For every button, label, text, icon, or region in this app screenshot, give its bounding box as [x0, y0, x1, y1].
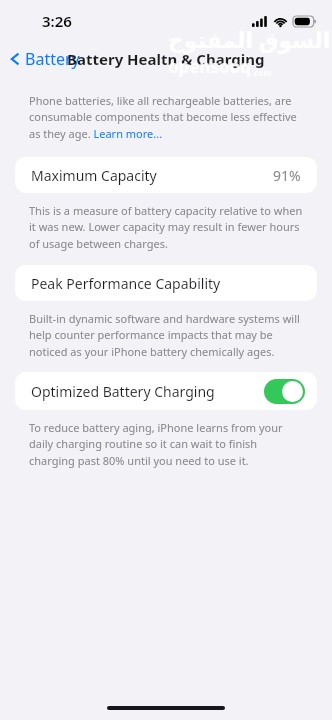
staticText: 3:26: [42, 11, 72, 31]
staticText: السوق المفتوح: [168, 24, 331, 54]
button[interactable]: Peak Performance Capability: [15, 265, 317, 301]
staticText: Phone batteries, like all rechargeable b…: [29, 93, 303, 142]
button[interactable]: Optimized Battery Charging: [15, 372, 317, 410]
staticText: Peak Performance Capability: [31, 274, 221, 293]
staticText: .com: [252, 67, 272, 78]
staticText: Maximum Capacity: [31, 166, 157, 185]
button[interactable]: Optimized Battery Charging toggle, on: [264, 379, 305, 404]
button[interactable]: Battery: [0, 44, 86, 74]
staticText: Optimized Battery Charging: [31, 382, 215, 401]
staticText: opensooq: [168, 55, 252, 78]
staticText: 91%: [273, 166, 301, 185]
staticText: To reduce battery aging, iPhone learns f…: [29, 420, 303, 469]
staticText: Built-in dynamic software and hardware s…: [29, 311, 303, 360]
button[interactable]: Maximum Capacity: [15, 157, 317, 193]
staticText: Battery: [25, 48, 80, 70]
staticText: Battery Healtn & Charging: [67, 49, 265, 69]
staticText: This is a measure of battery capacity re…: [29, 203, 303, 252]
